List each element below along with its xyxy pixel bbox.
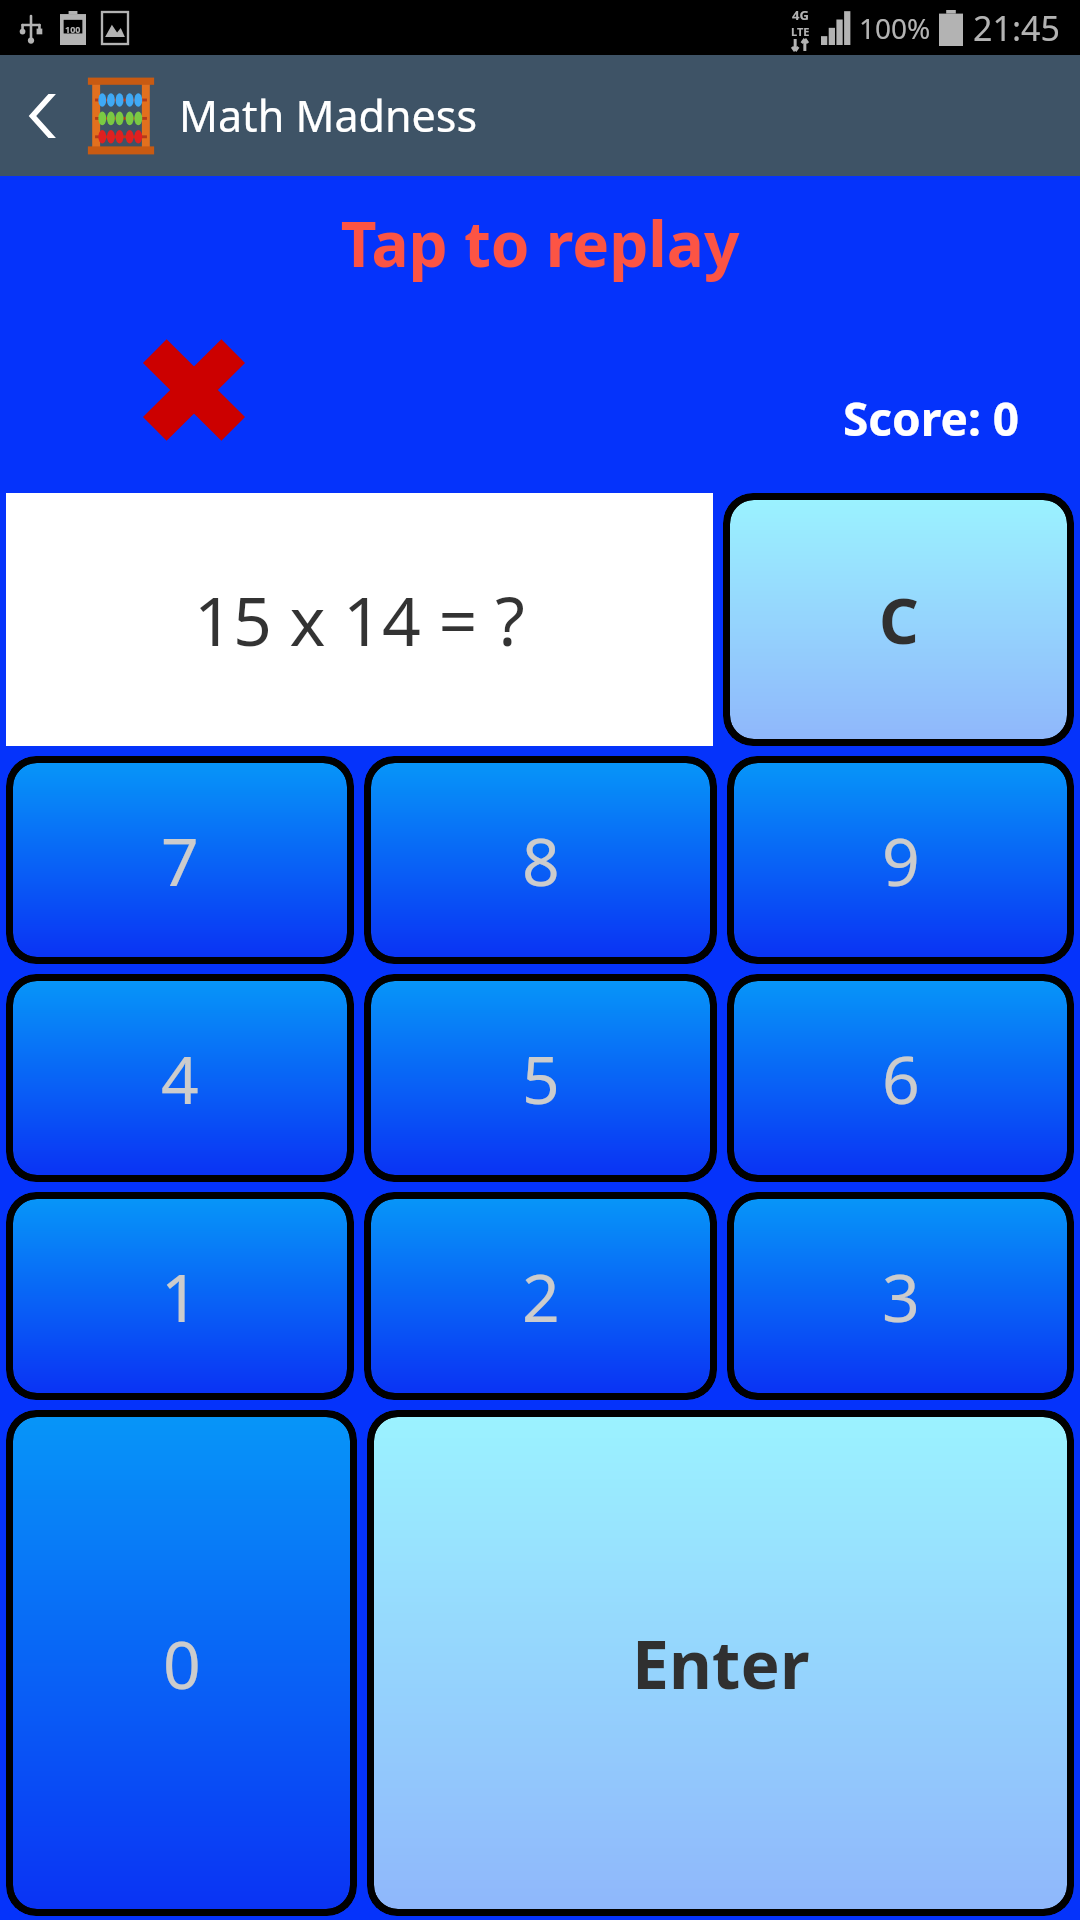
- staticText: 4G: [792, 6, 809, 24]
- button[interactable]: C: [730, 500, 1067, 739]
- staticText: Score: 0: [843, 387, 1020, 450]
- staticText: 5: [522, 1033, 560, 1123]
- button[interactable]: 7: [13, 763, 347, 957]
- button[interactable]: 8: [371, 763, 710, 957]
- staticText: 7: [161, 815, 199, 905]
- button[interactable]: 15 x 14 = ?: [6, 493, 713, 746]
- button[interactable]: 0: [13, 1417, 350, 1909]
- staticText: Math Madness: [179, 86, 477, 145]
- button[interactable]: 2: [371, 1199, 710, 1393]
- button[interactable]: Enter: [374, 1417, 1067, 1909]
- staticText: 100: [65, 23, 81, 35]
- staticText: LTE: [791, 24, 810, 39]
- staticText: 6: [882, 1033, 920, 1123]
- staticText: C: [879, 578, 919, 662]
- staticText: 9: [882, 815, 920, 905]
- staticText: 1: [161, 1251, 199, 1341]
- staticText: 100%: [859, 9, 931, 47]
- staticText: 2: [522, 1251, 560, 1341]
- staticText: 3: [882, 1251, 920, 1341]
- button[interactable]: 3: [734, 1199, 1067, 1393]
- staticText: 8: [522, 815, 560, 905]
- staticText: 21:45: [973, 5, 1060, 51]
- button[interactable]: 6: [734, 981, 1067, 1175]
- staticText: 15 x 14 = ?: [194, 573, 525, 666]
- staticText: 0: [163, 1618, 201, 1708]
- staticText: 4: [161, 1033, 199, 1123]
- button[interactable]: Back: [0, 55, 85, 176]
- staticText: Enter: [632, 1618, 810, 1708]
- button[interactable]: 1: [13, 1199, 347, 1393]
- button[interactable]: 4: [13, 981, 347, 1175]
- button[interactable]: 9: [734, 763, 1067, 957]
- button[interactable]: Tap to replay: [0, 201, 1080, 285]
- button[interactable]: 5: [371, 981, 710, 1175]
